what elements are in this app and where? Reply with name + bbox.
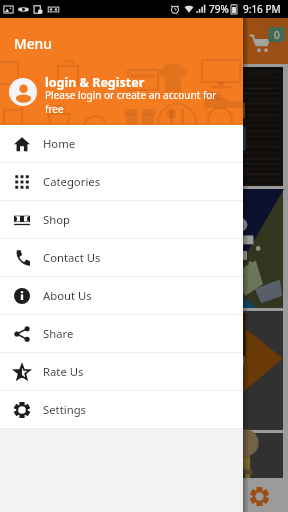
- staticText: About Us: [43, 288, 92, 303]
- button[interactable]: Shop: [0, 201, 243, 238]
- button[interactable]: [5, 311, 283, 430]
- button[interactable]: Home: [0, 125, 243, 162]
- staticText: Rate Us: [43, 364, 84, 379]
- button[interactable]: About Us: [0, 277, 243, 314]
- staticText: Menu: [14, 34, 52, 53]
- button[interactable]: Categories: [0, 163, 243, 200]
- staticText: Settings: [43, 402, 86, 417]
- staticText: Contact Us: [43, 250, 101, 265]
- staticText: login & Register: [45, 74, 145, 91]
- staticText: Please login or create an account for fr…: [45, 88, 233, 116]
- staticText: Shop: [43, 212, 70, 227]
- button[interactable]: Contact Us: [0, 239, 243, 276]
- button[interactable]: Settings: [0, 391, 243, 428]
- staticText: Share: [43, 326, 74, 341]
- button[interactable]: Cart: [247, 30, 273, 56]
- staticText: 9:16 PM: [243, 2, 281, 16]
- staticText: Categories: [43, 174, 101, 189]
- button[interactable]: Rate Us: [0, 353, 243, 390]
- button[interactable]: Share: [0, 315, 243, 352]
- button[interactable]: login & Register: [0, 64, 243, 125]
- staticText: 79%: [209, 2, 229, 16]
- button[interactable]: [5, 67, 283, 186]
- staticText: 0: [274, 28, 280, 42]
- button[interactable]: [5, 189, 283, 308]
- button[interactable]: Settings: [243, 481, 275, 512]
- button[interactable]: [5, 433, 283, 478]
- staticText: Home: [43, 136, 76, 151]
